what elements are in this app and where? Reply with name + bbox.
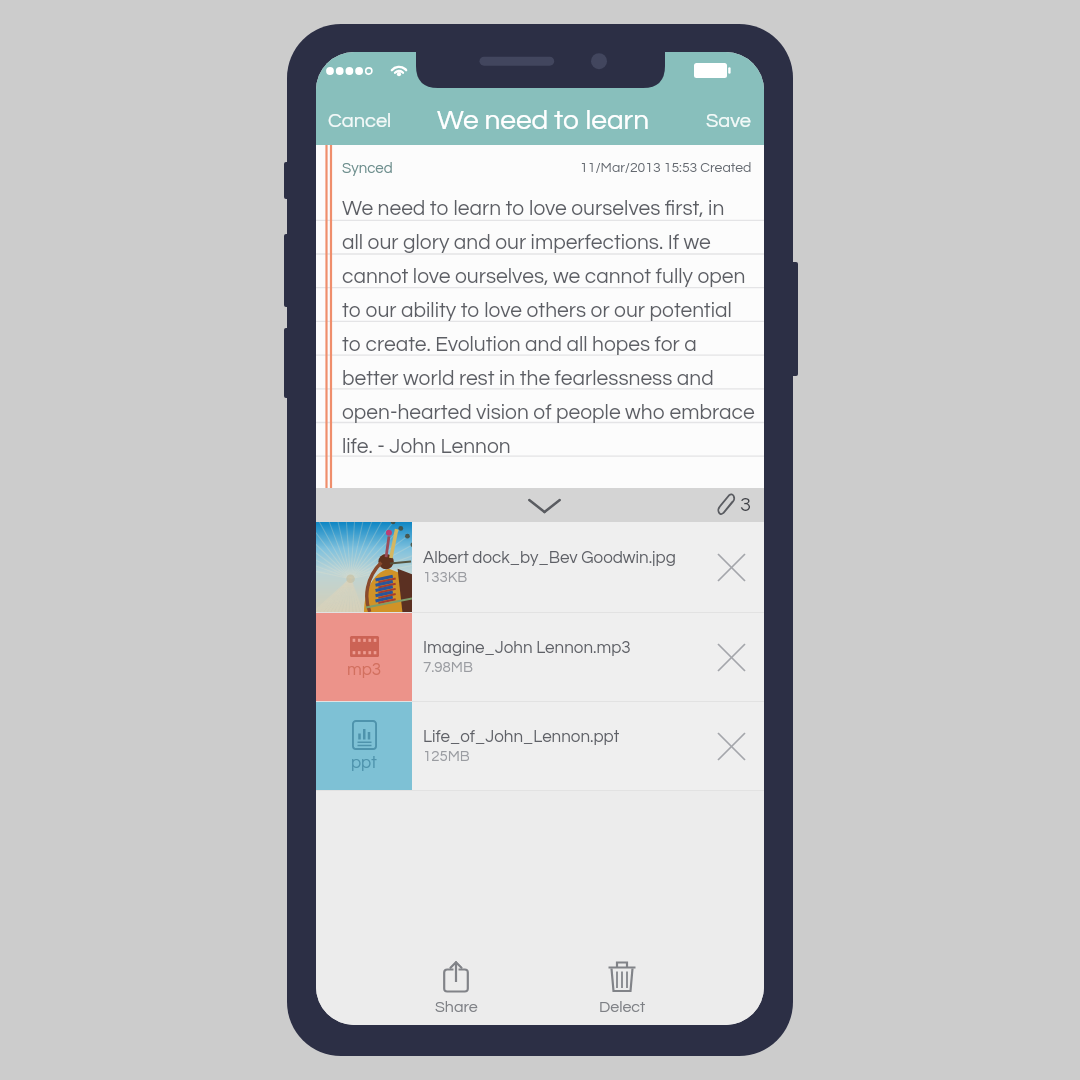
staticText: 133KB (423, 570, 468, 585)
staticText: better world rest in the fearlessness an… (342, 368, 714, 390)
button[interactable]: Remove attachment (698, 522, 764, 612)
staticText: Albert dock_by_Bev Goodwin.jpg (423, 549, 676, 567)
staticText: We need to learn (437, 106, 650, 135)
staticText: all our glory and our imperfections. If … (342, 232, 711, 254)
staticText: to our ability to love others or our pot… (342, 300, 732, 322)
button[interactable]: Save (698, 106, 759, 137)
staticText: 125MB (423, 749, 470, 764)
staticText: 7.98MB (423, 660, 473, 675)
button[interactable]: mp3 (316, 613, 764, 701)
button[interactable]: Cancel (320, 106, 400, 137)
staticText: Cancel (328, 111, 392, 132)
staticText: open-hearted vision of people who embrac… (342, 402, 755, 424)
staticText: Imagine_John Lennon.mp3 (423, 639, 631, 657)
button[interactable]: Delect (586, 960, 658, 1016)
button[interactable]: Remove attachment (698, 702, 764, 790)
staticText: life. - John Lennon (342, 436, 511, 458)
staticText: to create. Evolution and all hopes for a (342, 334, 697, 356)
staticText: Synced (342, 161, 393, 176)
button[interactable]: Albert dock_by_Bev Goodwin.jpg (316, 522, 764, 612)
button[interactable]: Collapse attachments (316, 488, 764, 522)
button[interactable]: Share (420, 960, 492, 1016)
staticText: 11/Mar/2013 15:53 Created (580, 161, 752, 175)
staticText: Share (435, 999, 478, 1015)
staticText: Life_of_John_Lennon.ppt (423, 728, 620, 746)
staticText: mp3 (347, 661, 382, 679)
staticText: We need to learn to love ourselves first… (342, 198, 725, 220)
staticText: 3 (740, 495, 751, 516)
button[interactable]: ppt (316, 702, 764, 790)
staticText: Save (706, 111, 751, 132)
button[interactable]: Remove attachment (698, 613, 764, 701)
staticText: Delect (599, 999, 646, 1015)
staticText: cannot love ourselves, we cannot fully o… (342, 266, 746, 288)
staticText: ppt (351, 754, 377, 772)
